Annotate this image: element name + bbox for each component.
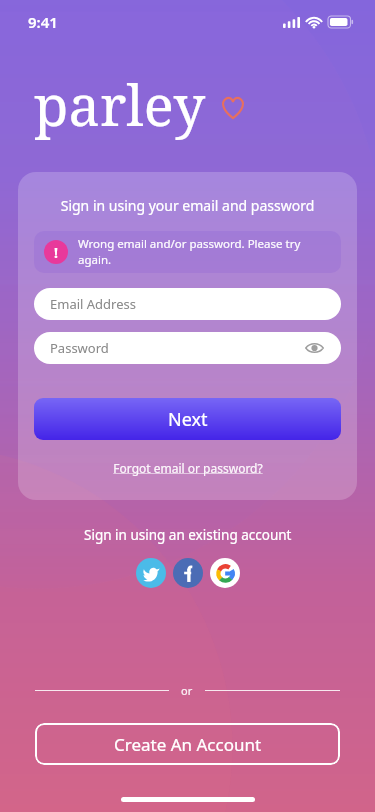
staticText: or	[181, 683, 193, 698]
button[interactable]: Create An Account	[35, 723, 340, 765]
staticText: !	[54, 243, 58, 262]
button[interactable]: Email Address	[34, 288, 341, 320]
button[interactable]: Forgot email or password?	[34, 460, 341, 476]
button[interactable]: Sign in with Facebook	[173, 558, 203, 588]
staticText: parley	[34, 66, 206, 142]
button[interactable]: Next	[34, 398, 341, 440]
staticText: Password	[50, 339, 109, 357]
button[interactable]: Show password	[303, 337, 325, 359]
staticText: Create An Account	[114, 733, 262, 756]
button[interactable]: Password	[34, 332, 341, 364]
staticText: Wrong email and/or password. Please try …	[78, 236, 331, 268]
button[interactable]: Sign in with Google	[210, 558, 240, 588]
staticText: Forgot email or password?	[113, 460, 263, 476]
staticText: Sign in using your email and password	[34, 196, 341, 215]
staticText: 9:41	[28, 12, 58, 32]
button[interactable]: Sign in with Twitter	[136, 558, 166, 588]
staticText: Next	[168, 407, 208, 432]
staticText: Sign in using an existing account	[84, 526, 292, 544]
staticText: Email Address	[50, 295, 136, 313]
